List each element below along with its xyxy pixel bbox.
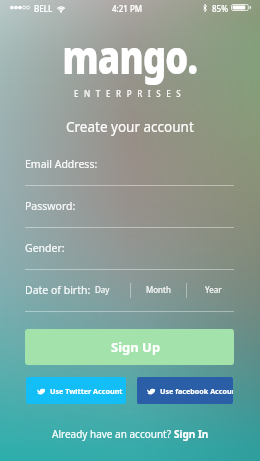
button[interactable]: Password: bbox=[25, 199, 234, 228]
staticText: Already have an account? bbox=[52, 427, 174, 441]
button[interactable]: Gender: bbox=[25, 241, 234, 270]
staticText: BELL bbox=[34, 3, 53, 14]
staticText: Date of birth: bbox=[25, 283, 91, 297]
staticText: Password: bbox=[25, 199, 76, 213]
staticText: Year bbox=[205, 284, 222, 295]
staticText: Use Twitter Account bbox=[50, 386, 123, 396]
staticText: Day bbox=[95, 284, 110, 295]
button[interactable]: Year bbox=[185, 283, 242, 295]
button[interactable]: Day bbox=[74, 283, 131, 295]
button[interactable]: Sign In bbox=[174, 427, 209, 441]
staticText: Use facebook Account bbox=[160, 386, 233, 396]
staticText: Email Address: bbox=[25, 157, 98, 171]
staticText: Gender: bbox=[25, 241, 65, 255]
button[interactable]: Use facebook Account bbox=[137, 377, 233, 404]
staticText: Sign Up bbox=[111, 338, 161, 356]
staticText: Month bbox=[146, 284, 171, 295]
button[interactable]: Email Address: bbox=[25, 157, 234, 186]
button[interactable]: Month bbox=[130, 283, 187, 295]
staticText: 85% bbox=[212, 3, 228, 14]
button[interactable]: Sign Up bbox=[25, 329, 234, 365]
staticText: mango. bbox=[62, 25, 197, 88]
staticText: ENTERPRISES bbox=[74, 88, 187, 99]
staticText: Create your account bbox=[66, 118, 194, 136]
button[interactable]: Use Twitter Account bbox=[26, 377, 126, 404]
staticText: 4:21 PM bbox=[112, 3, 143, 14]
staticText: Sign In bbox=[174, 427, 209, 441]
